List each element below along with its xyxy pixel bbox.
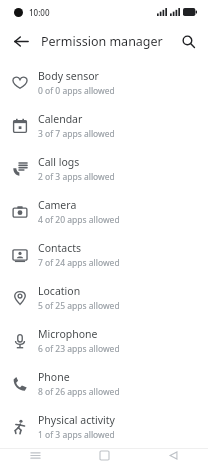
staticText: Calendar <box>38 112 83 126</box>
staticText: 10:00 <box>29 7 50 18</box>
button[interactable]: Recent apps <box>0 449 70 462</box>
button[interactable]: Physical activity <box>0 405 208 448</box>
staticText: Phone <box>38 370 70 384</box>
button[interactable]: Phone <box>0 362 208 405</box>
staticText: Camera <box>38 198 77 212</box>
staticText: Permission manager <box>41 33 163 50</box>
button[interactable]: Location <box>0 276 208 319</box>
staticText: 5 of 25 apps allowed <box>38 300 120 312</box>
staticText: 6 of 23 apps allowed <box>38 343 120 355</box>
button[interactable]: Back <box>9 29 33 53</box>
staticText: 2 of 3 apps allowed <box>38 171 115 183</box>
button[interactable]: Contacts <box>0 233 208 276</box>
staticText: Microphone <box>38 327 98 341</box>
button[interactable]: Microphone <box>0 319 208 362</box>
button[interactable]: Search <box>176 29 200 53</box>
staticText: Call logs <box>38 155 80 169</box>
staticText: 1 of 3 apps allowed <box>38 429 115 441</box>
button[interactable]: Camera <box>0 190 208 233</box>
staticText: 7 of 24 apps allowed <box>38 257 120 269</box>
button[interactable]: Calendar <box>0 104 208 147</box>
staticText: 3 of 7 apps allowed <box>38 128 115 140</box>
staticText: 8 of 26 apps allowed <box>38 386 120 398</box>
staticText: Location <box>38 284 81 298</box>
button[interactable]: Back <box>139 449 208 462</box>
staticText: Body sensor <box>38 69 99 83</box>
button[interactable]: Home <box>70 449 139 462</box>
button[interactable]: Call logs <box>0 147 208 190</box>
button[interactable]: Body sensor <box>0 61 208 104</box>
staticText: 4 of 20 apps allowed <box>38 214 120 226</box>
staticText: 0 of 0 apps allowed <box>38 85 115 97</box>
staticText: Physical activity <box>38 413 115 427</box>
staticText: Contacts <box>38 241 82 255</box>
